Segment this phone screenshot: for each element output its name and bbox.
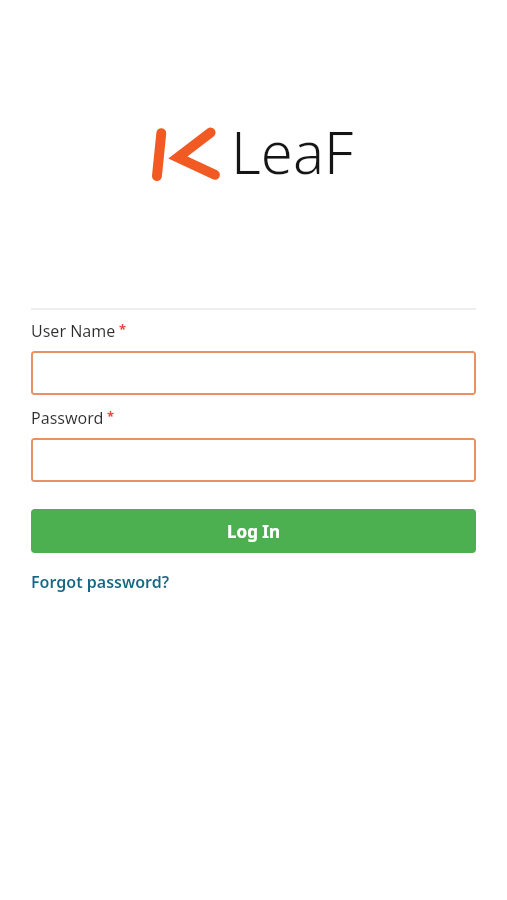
button[interactable]: Forgot password? — [31, 571, 170, 593]
staticText: Password — [31, 407, 104, 429]
staticText: * — [107, 407, 115, 425]
button[interactable]: Password input — [31, 438, 476, 482]
staticText: User Name — [31, 320, 116, 342]
staticText: * — [119, 320, 127, 338]
button[interactable]: User Name input — [31, 351, 476, 395]
other: ICLeaF logo mark — [153, 122, 225, 186]
staticText: Log In — [227, 520, 280, 543]
button[interactable]: Log In — [31, 509, 476, 553]
staticText: Forgot password? — [31, 571, 170, 593]
staticText: LeaF — [231, 112, 354, 191]
